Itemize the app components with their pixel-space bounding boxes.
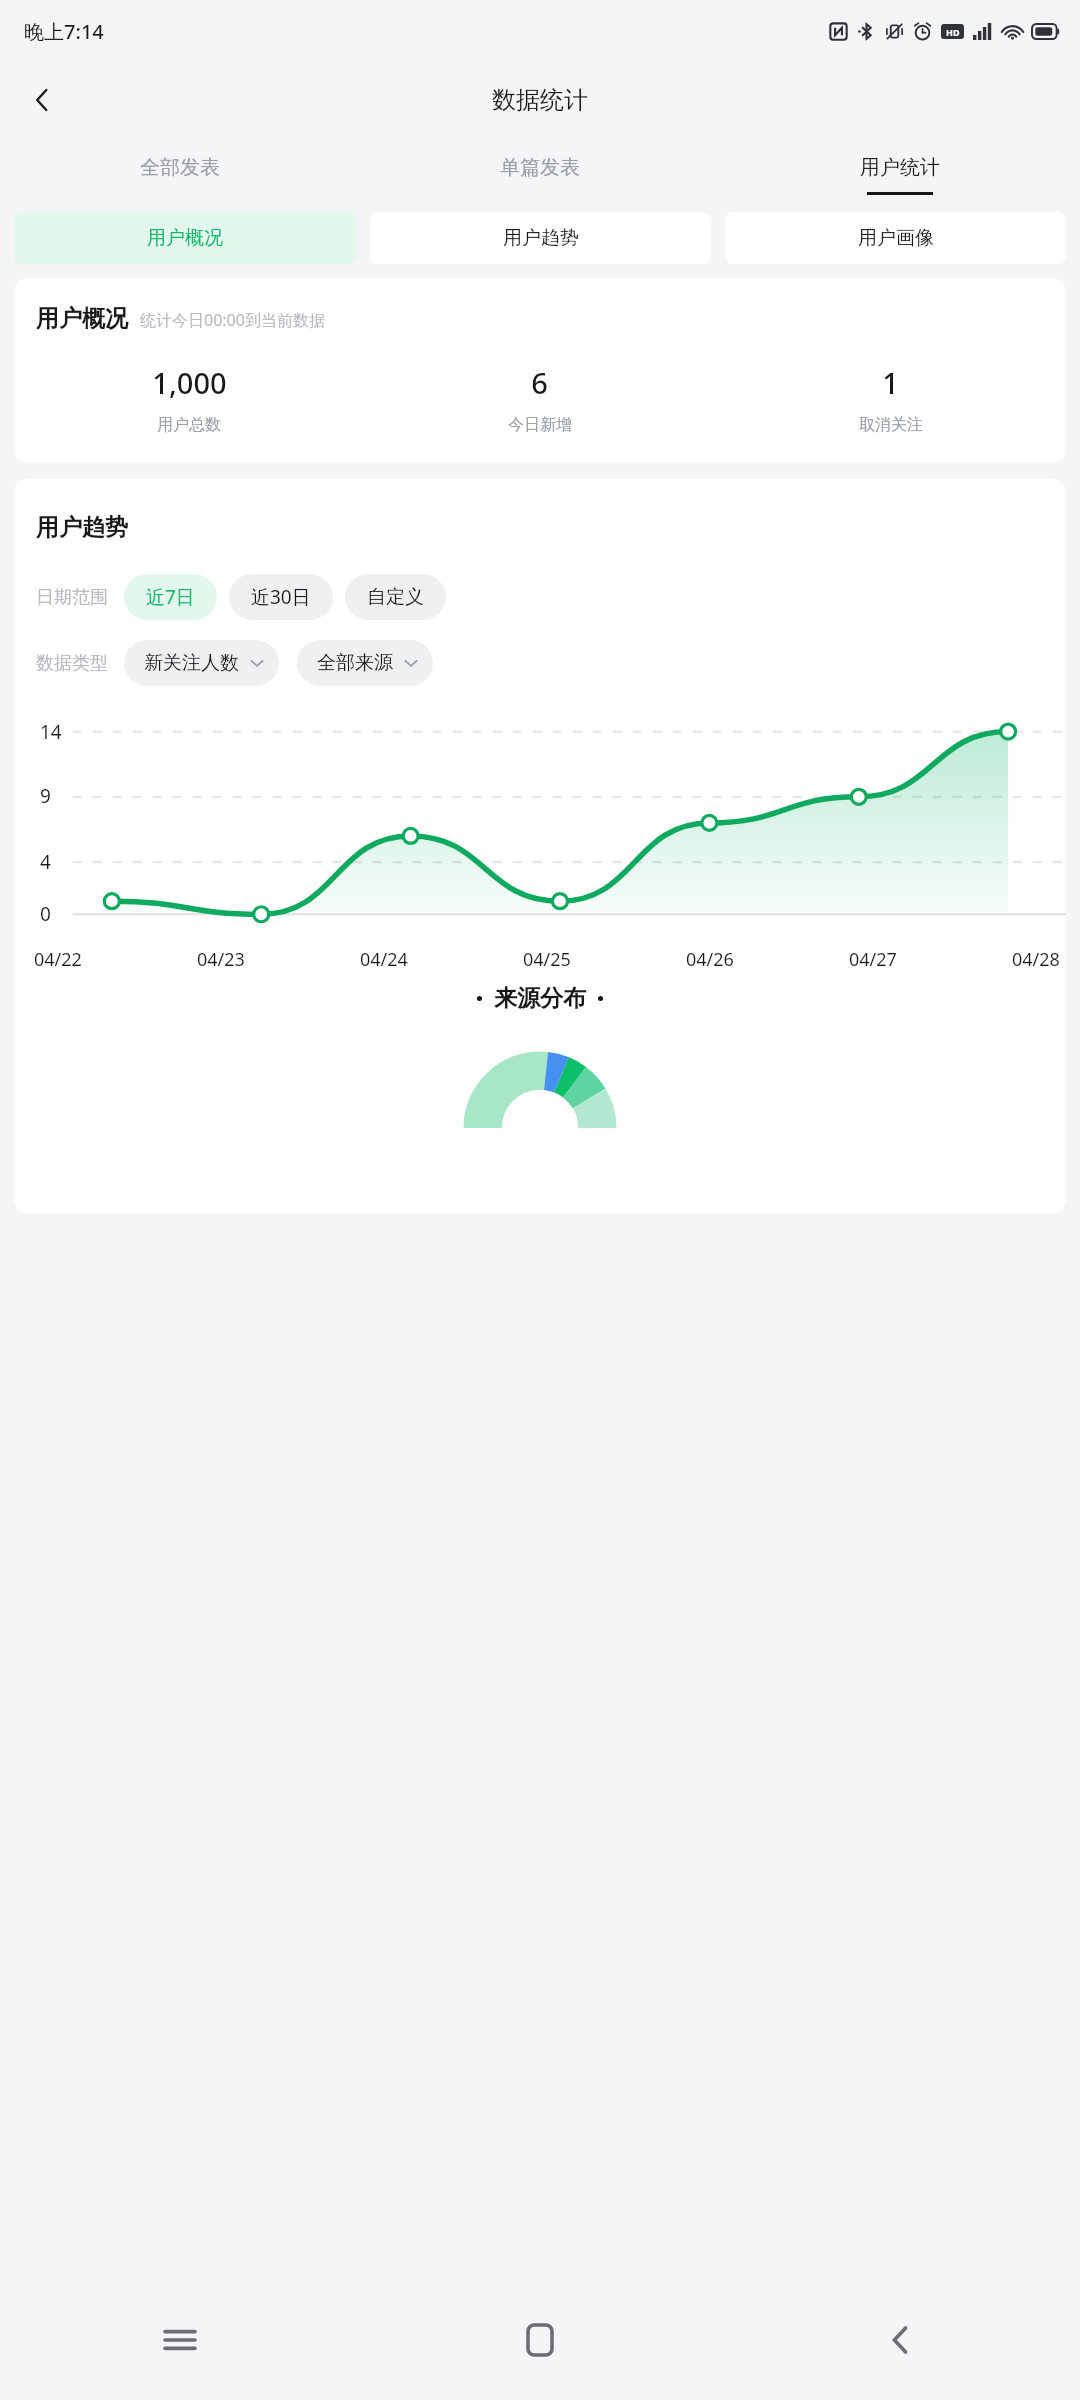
button[interactable]: 全部来源 — [297, 640, 433, 686]
button[interactable]: 单篇发表 — [360, 138, 720, 212]
staticText: 14 — [40, 719, 62, 745]
staticText: 04/22 — [34, 947, 82, 972]
staticText: 04/28 — [1012, 947, 1060, 972]
button[interactable]: 用户画像 — [725, 212, 1066, 264]
button[interactable]: 1,000 — [14, 363, 364, 435]
staticText: 6 — [531, 363, 548, 402]
button[interactable]: 用户统计 — [720, 138, 1080, 212]
button[interactable]: 用户概况 — [14, 212, 356, 264]
staticText: 近30日 — [251, 584, 311, 610]
button[interactable]: Home — [360, 2280, 720, 2400]
staticText: 04/23 — [197, 947, 245, 972]
staticText: 用户总数 — [157, 415, 221, 435]
staticText: 今日新增 — [508, 415, 572, 435]
button[interactable]: 用户趋势 — [370, 212, 711, 264]
staticText: 数据统计 — [492, 85, 588, 115]
button[interactable]: 近30日 — [229, 574, 333, 620]
staticText: 自定义 — [367, 585, 424, 609]
staticText: 用户概况 — [147, 226, 223, 250]
staticText: 1,000 — [152, 363, 227, 402]
button[interactable]: Back — [720, 2280, 1080, 2400]
staticText: 04/27 — [849, 947, 897, 972]
staticText: 新关注人数 — [144, 651, 239, 675]
staticText: 晚上7:14 — [24, 18, 104, 45]
staticText: 取消关注 — [859, 415, 923, 435]
staticText: 全部来源 — [317, 651, 393, 675]
button[interactable]: 新关注人数 — [124, 640, 279, 686]
staticText: 1 — [882, 363, 899, 402]
staticText: 9 — [40, 783, 51, 809]
button[interactable]: Recent apps — [0, 2280, 360, 2400]
staticText: 来源分布 — [494, 984, 586, 1013]
staticText: 单篇发表 — [500, 155, 580, 180]
staticText: 4 — [40, 849, 51, 875]
staticText: 04/24 — [360, 947, 408, 972]
staticText: 全部发表 — [140, 155, 220, 180]
staticText: HD — [946, 26, 960, 38]
staticText: 统计今日00:00到当前数据 — [140, 309, 325, 331]
staticText: 日期范围 — [36, 586, 108, 609]
button[interactable]: 近7日 — [124, 574, 217, 620]
staticText: 04/25 — [523, 947, 571, 972]
staticText: 04/26 — [686, 947, 734, 972]
staticText: 近7日 — [146, 584, 195, 610]
staticText: 用户统计 — [860, 155, 940, 180]
button[interactable]: 6 — [364, 363, 715, 435]
staticText: 用户趋势 — [503, 226, 579, 250]
button[interactable]: 全部发表 — [0, 138, 360, 212]
staticText: 0 — [40, 901, 51, 927]
button[interactable]: 自定义 — [345, 574, 446, 620]
button[interactable]: 1 — [715, 363, 1066, 435]
staticText: 用户趋势 — [36, 513, 128, 542]
staticText: 用户画像 — [858, 226, 934, 250]
staticText: 用户概况 — [36, 304, 128, 333]
button[interactable]: Back — [14, 72, 70, 128]
staticText: 数据类型 — [36, 652, 108, 675]
